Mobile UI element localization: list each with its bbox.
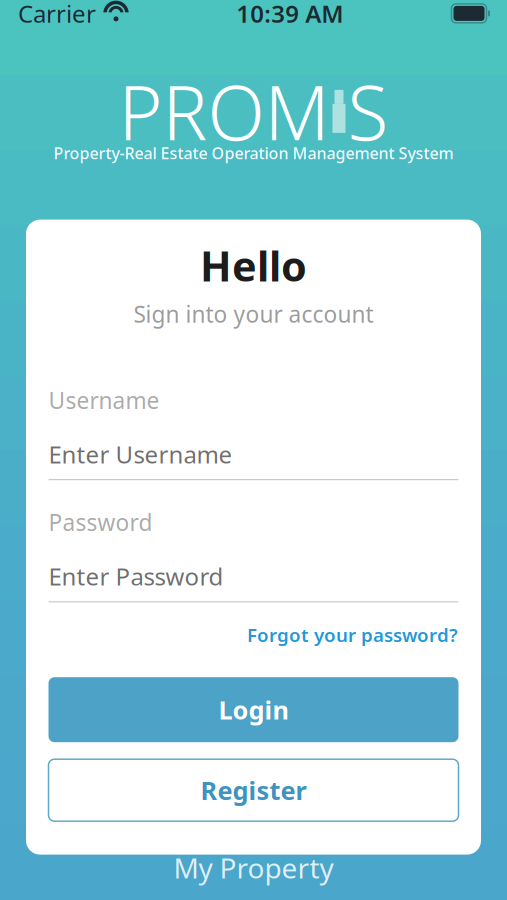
staticText: Register — [200, 773, 306, 807]
staticText: 10:39 AM — [236, 0, 343, 29]
staticText: Login — [218, 693, 288, 726]
staticText: Hello — [200, 238, 307, 293]
staticText: Forgot your password? — [247, 622, 458, 647]
staticText: PROM — [118, 62, 329, 161]
staticText: Username — [48, 385, 159, 415]
button[interactable]: Forgot your password? — [247, 618, 458, 651]
button[interactable]: Login — [48, 677, 458, 742]
staticText: Password — [48, 507, 152, 537]
staticText: Sign into your account — [133, 299, 373, 329]
staticText: Carrier — [18, 0, 96, 29]
staticText: My Property — [173, 849, 333, 886]
staticText: Enter Username — [48, 438, 232, 470]
staticText: S — [347, 62, 388, 161]
button[interactable]: Register — [48, 759, 458, 821]
staticText: Enter Password — [48, 560, 223, 592]
staticText: Property-Real Estate Operation Managemen… — [53, 142, 453, 164]
